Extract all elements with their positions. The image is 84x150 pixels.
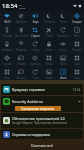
button[interactable]: Themes [42, 53, 56, 67]
button[interactable]: Mobile data [14, 11, 28, 25]
staticText: Браузер справки [12, 87, 73, 92]
button[interactable]: Hotspot [14, 39, 28, 53]
button[interactable]: Cache [0, 67, 14, 80]
button[interactable]: Auto rotate [56, 25, 70, 39]
button[interactable]: Очистить всё [0, 141, 84, 150]
staticText: Геолок [2, 62, 12, 66]
button[interactable]: Обновление приложений 24 [1, 113, 83, 128]
staticText: Данные [16, 20, 27, 24]
button[interactable]: Screenshot [28, 25, 42, 39]
staticText: Авто [60, 76, 67, 80]
staticText: Батарея [2, 48, 13, 52]
button[interactable]: More [70, 67, 84, 80]
staticText: Синхр [31, 48, 40, 52]
other: Expand [78, 100, 81, 103]
button[interactable]: Справка и поддержка [1, 129, 83, 139]
staticText: Ночь [60, 20, 67, 24]
staticText: Экран [45, 76, 54, 80]
staticText: Скрин [31, 34, 40, 38]
staticText: Кэш [4, 76, 10, 80]
button[interactable]: Modes [70, 39, 84, 53]
button[interactable]: Record [14, 67, 28, 80]
button[interactable]: Night mode [56, 11, 70, 25]
button[interactable]: Lock [42, 39, 56, 53]
button[interactable]: Brightness [28, 53, 42, 67]
staticText: Фонарь [2, 34, 13, 38]
staticText: Блок [46, 48, 53, 52]
button[interactable]: Flashlight [0, 25, 14, 39]
button[interactable]: Bluetooth [14, 25, 28, 39]
staticText: Экран [17, 62, 26, 66]
staticText: Модем [16, 48, 26, 52]
staticText: Часы [32, 76, 39, 80]
staticText: пн [19, 3, 22, 6]
staticText: Звук [32, 20, 39, 24]
button[interactable]: Браузер справки [1, 84, 83, 95]
staticText: Bluetooth [15, 34, 28, 38]
button[interactable]: Airplane mode [42, 25, 56, 39]
button[interactable]: Eye comfort [56, 39, 70, 53]
button[interactable]: Security Antivirus [1, 96, 83, 112]
staticText: 23.09 [19, 6, 26, 9]
staticText: 18:54 [2, 2, 18, 10]
staticText: Темы [45, 62, 53, 66]
button[interactable]: Clock [28, 67, 42, 80]
button[interactable]: Auto [56, 67, 70, 80]
staticText: Яркость [30, 62, 41, 66]
staticText: Ещё [74, 62, 80, 66]
button[interactable]: Display [42, 67, 56, 80]
button[interactable]: Сканирование завершено [15, 106, 61, 111]
staticText: Wi-Fi [4, 20, 11, 24]
staticText: Не бесп [44, 20, 55, 24]
staticText: Запись [16, 76, 26, 80]
staticText: Google Маркет: Приложения обновлены [12, 121, 68, 125]
button[interactable]: Location [70, 11, 84, 25]
staticText: Security Antivirus [12, 99, 78, 104]
button[interactable]: Sound [28, 11, 42, 25]
staticText: Поворот [57, 34, 69, 38]
button[interactable]: Do not disturb [42, 11, 56, 25]
staticText: Справка и поддержка [12, 132, 81, 137]
button[interactable]: Wi-Fi [0, 11, 14, 25]
staticText: Фото [60, 62, 67, 66]
staticText: Геодан [72, 20, 82, 24]
staticText: NFC [74, 34, 80, 38]
staticText: Режим [72, 48, 82, 52]
staticText: Очистить всё [31, 143, 53, 148]
button[interactable]: Battery [0, 39, 14, 53]
staticText: Глаза [59, 48, 67, 52]
staticText: Ещё [74, 76, 80, 80]
button[interactable]: Cast [14, 53, 28, 67]
staticText: Полёт [45, 34, 54, 38]
staticText: Обновление приложений 24 [12, 116, 65, 121]
button[interactable]: Sync [28, 39, 42, 53]
staticText: Сканирование завершено [21, 107, 55, 111]
button[interactable]: NFC [70, 25, 84, 39]
button[interactable]: GPS [0, 53, 14, 67]
button[interactable]: Screenshot [56, 53, 70, 67]
button[interactable]: More [70, 53, 84, 67]
staticText: 18:54 [73, 88, 81, 92]
